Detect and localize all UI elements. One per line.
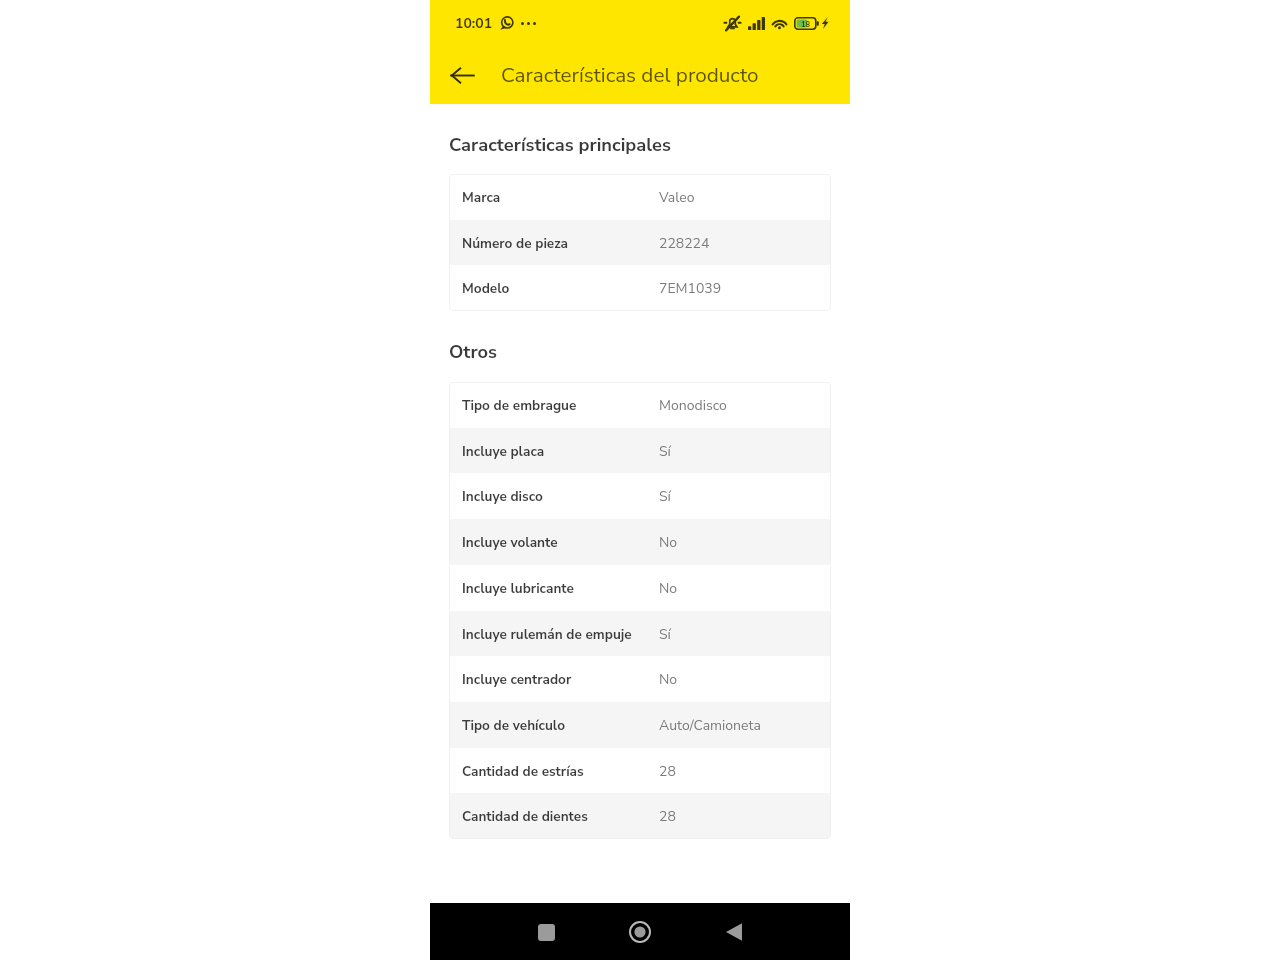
staticText: 18 bbox=[801, 19, 810, 29]
staticText: 7EM1039 bbox=[659, 279, 722, 298]
staticText: 228224 bbox=[659, 234, 710, 253]
staticText: Cantidad de estrías bbox=[462, 762, 659, 781]
staticText: Sí bbox=[659, 442, 671, 461]
staticText: Otros bbox=[449, 339, 497, 364]
staticText: Sí bbox=[659, 625, 671, 644]
button[interactable]: Incluye rulemán de empuje bbox=[449, 611, 831, 657]
button[interactable]: Tipo de vehículo bbox=[449, 702, 831, 748]
staticText: No bbox=[659, 579, 678, 598]
staticText: Características del producto bbox=[501, 61, 759, 89]
staticText: 28 bbox=[659, 807, 676, 826]
staticText: 10:01 bbox=[455, 14, 493, 33]
staticText: Incluye rulemán de empuje bbox=[462, 625, 659, 644]
button[interactable]: Incluye placa bbox=[449, 428, 831, 474]
button[interactable]: Recent apps bbox=[524, 910, 568, 954]
button[interactable]: Número de pieza bbox=[449, 220, 831, 266]
staticText: Número de pieza bbox=[462, 234, 659, 253]
button[interactable]: Cantidad de dientes bbox=[449, 793, 831, 839]
staticText: No bbox=[659, 533, 678, 552]
staticText: Características principales bbox=[449, 132, 671, 157]
staticText: Monodisco bbox=[659, 396, 727, 415]
button[interactable]: Back bbox=[430, 46, 494, 104]
staticText: Sí bbox=[659, 487, 671, 506]
staticText: Cantidad de dientes bbox=[462, 807, 659, 826]
staticText: Modelo bbox=[462, 279, 659, 298]
staticText: Tipo de embrague bbox=[462, 396, 659, 415]
staticText: Incluye disco bbox=[462, 487, 659, 506]
staticText: Marca bbox=[462, 188, 659, 207]
button[interactable]: Incluye disco bbox=[449, 473, 831, 519]
staticText: Valeo bbox=[659, 188, 695, 207]
staticText: Incluye centrador bbox=[462, 670, 659, 689]
staticText: Tipo de vehículo bbox=[462, 716, 659, 735]
button[interactable]: Home bbox=[618, 910, 662, 954]
staticText: Incluye placa bbox=[462, 442, 659, 461]
staticText: Incluye lubricante bbox=[462, 579, 659, 598]
button[interactable]: Cantidad de estrías bbox=[449, 748, 831, 794]
button[interactable]: Incluye lubricante bbox=[449, 565, 831, 611]
button[interactable]: Incluye centrador bbox=[449, 656, 831, 702]
button[interactable]: Tipo de embrague bbox=[449, 382, 831, 428]
button[interactable]: Marca bbox=[449, 174, 831, 220]
staticText: Incluye volante bbox=[462, 533, 659, 552]
staticText: Auto/Camioneta bbox=[659, 716, 761, 735]
staticText: No bbox=[659, 670, 678, 689]
staticText: 28 bbox=[659, 762, 676, 781]
button[interactable]: Incluye volante bbox=[449, 519, 831, 565]
button[interactable]: Back bbox=[712, 910, 756, 954]
button[interactable]: Modelo bbox=[449, 265, 831, 311]
